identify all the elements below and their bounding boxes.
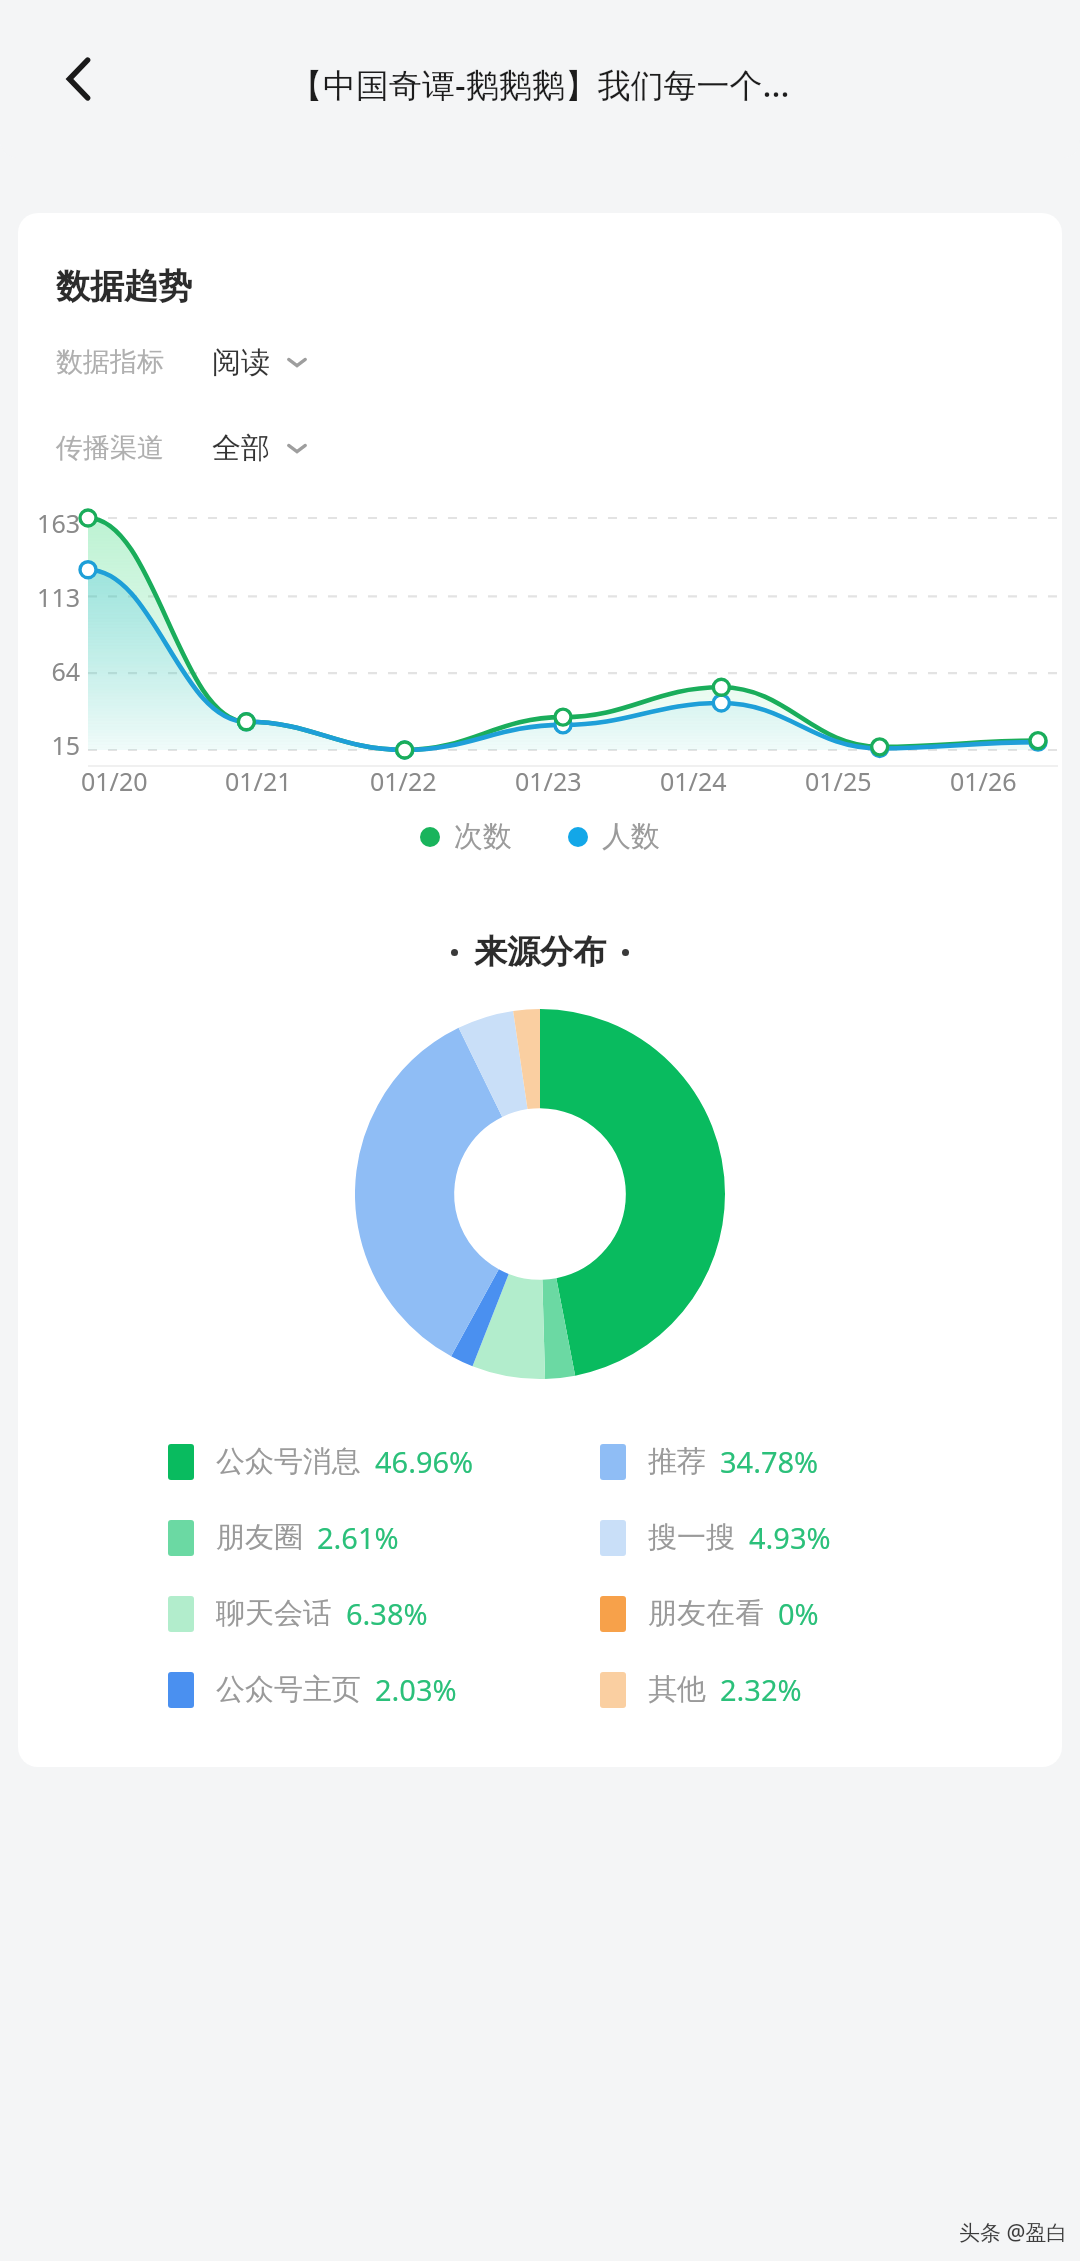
- staticText: 搜一搜: [648, 1519, 735, 1556]
- staticText: 113: [18, 580, 80, 614]
- staticText: 朋友在看: [648, 1595, 764, 1632]
- button[interactable]: 其他: [600, 1670, 1032, 1709]
- staticText: 46.96%: [375, 1442, 474, 1481]
- staticText: 01/25: [805, 764, 872, 798]
- staticText: 数据指标: [56, 345, 164, 379]
- staticText: 公众号主页: [216, 1671, 361, 1708]
- staticText: 传播渠道: [56, 431, 164, 465]
- staticText: 【中国奇谭-鹅鹅鹅】我们每一个...: [290, 62, 790, 107]
- staticText: 0%: [778, 1594, 819, 1633]
- staticText: 64: [18, 654, 80, 688]
- staticText: 4.93%: [749, 1518, 831, 1557]
- button[interactable]: 数据指标: [56, 340, 1062, 384]
- button[interactable]: 朋友在看: [600, 1594, 1032, 1633]
- button[interactable]: 搜一搜: [600, 1518, 1032, 1557]
- staticText: 公众号消息: [216, 1443, 361, 1480]
- staticText: 01/26: [950, 764, 1017, 798]
- staticText: 2.03%: [375, 1670, 457, 1709]
- staticText: 人数: [602, 818, 660, 855]
- staticText: 聊天会话: [216, 1595, 332, 1632]
- staticText: 推荐: [648, 1443, 706, 1480]
- staticText: 2.61%: [317, 1518, 399, 1557]
- staticText: 163: [18, 506, 80, 540]
- staticText: 2.32%: [720, 1670, 802, 1709]
- staticText: 数据趋势: [56, 265, 192, 308]
- staticText: 次数: [454, 818, 512, 855]
- button[interactable]: 公众号主页: [168, 1670, 600, 1709]
- staticText: 01/22: [370, 764, 437, 798]
- staticText: 其他: [648, 1671, 706, 1708]
- staticText: 34.78%: [720, 1442, 819, 1481]
- staticText: 头条 @盈白: [959, 2218, 1068, 2247]
- staticText: 6.38%: [346, 1594, 428, 1633]
- staticText: 全部: [212, 430, 270, 467]
- button[interactable]: 公众号消息: [168, 1442, 600, 1481]
- button[interactable]: 传播渠道: [56, 426, 1062, 470]
- staticText: 01/24: [660, 764, 727, 798]
- button[interactable]: 人数: [568, 818, 660, 855]
- staticText: 01/21: [225, 764, 292, 798]
- staticText: 来源分布: [474, 931, 606, 973]
- button[interactable]: 朋友圈: [168, 1518, 600, 1557]
- button[interactable]: 次数: [420, 818, 512, 855]
- button[interactable]: 推荐: [600, 1442, 1032, 1481]
- button[interactable]: Back: [40, 44, 110, 114]
- staticText: 01/20: [81, 764, 148, 798]
- button[interactable]: 聊天会话: [168, 1594, 600, 1633]
- staticText: 01/23: [515, 764, 582, 798]
- staticText: 阅读: [212, 344, 270, 381]
- staticText: 15: [18, 728, 80, 762]
- staticText: 朋友圈: [216, 1519, 303, 1556]
